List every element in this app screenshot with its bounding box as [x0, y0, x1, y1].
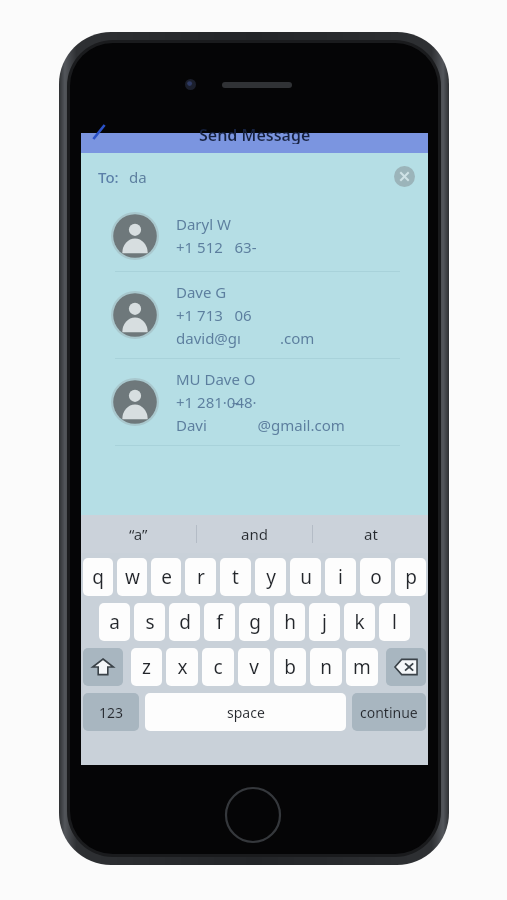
button[interactable]: m — [346, 648, 378, 686]
staticText: continue — [360, 703, 418, 722]
staticText: v — [249, 654, 259, 680]
staticText: m — [353, 654, 371, 680]
button[interactable]: k — [344, 603, 375, 641]
button[interactable]: Backspace — [386, 648, 426, 686]
button[interactable]: o — [360, 558, 391, 596]
staticText: “a” — [129, 524, 148, 544]
staticText: q — [92, 564, 104, 590]
staticText: r — [197, 564, 205, 590]
staticText: b — [284, 654, 296, 680]
staticText: d — [179, 609, 191, 635]
staticText: t — [232, 564, 239, 590]
button[interactable]: p — [395, 558, 426, 596]
staticText: u — [300, 564, 312, 590]
button[interactable]: a — [99, 603, 130, 641]
staticText: +1 713 06 — [176, 305, 252, 325]
staticText: w — [125, 564, 140, 590]
staticText: y — [266, 564, 276, 590]
button[interactable]: x — [166, 648, 198, 686]
button[interactable]: u — [290, 558, 321, 596]
button[interactable]: Back — [91, 125, 107, 143]
staticText: o — [370, 564, 382, 590]
staticText: +1 512 63- — [176, 237, 257, 257]
staticText: s — [145, 609, 155, 635]
button[interactable]: y — [255, 558, 286, 596]
button[interactable]: i — [325, 558, 356, 596]
button[interactable]: continue — [352, 693, 426, 731]
staticText: n — [320, 654, 332, 680]
staticText: z — [142, 654, 151, 680]
staticText: e — [161, 564, 172, 590]
button[interactable]: s — [134, 603, 165, 641]
staticText: j — [322, 609, 327, 635]
staticText: i — [338, 564, 343, 590]
staticText: Dave G — [176, 282, 227, 302]
button[interactable]: h — [274, 603, 305, 641]
button[interactable]: “a” — [81, 515, 196, 553]
staticText: Send Message — [199, 124, 311, 144]
staticText: c — [213, 654, 223, 680]
button[interactable]: d — [169, 603, 200, 641]
button[interactable]: and — [197, 515, 312, 553]
button[interactable]: f — [204, 603, 235, 641]
staticText: david@gı .com — [176, 328, 315, 348]
staticText: 123 — [99, 703, 124, 722]
button[interactable]: z — [131, 648, 162, 686]
staticText: f — [216, 609, 223, 635]
staticText: k — [354, 609, 365, 635]
button[interactable]: Shift — [83, 648, 123, 686]
button[interactable]: w — [117, 558, 147, 596]
staticText: da — [129, 167, 147, 187]
button[interactable]: Daryl W — [81, 200, 428, 271]
button[interactable]: j — [309, 603, 340, 641]
staticText: and — [241, 524, 268, 544]
button[interactable]: Dave G — [81, 272, 428, 358]
button[interactable]: space — [145, 693, 346, 731]
button[interactable]: c — [202, 648, 234, 686]
staticText: p — [405, 564, 417, 590]
button[interactable]: e — [151, 558, 181, 596]
staticText: l — [392, 609, 397, 635]
staticText: at — [364, 524, 378, 544]
button[interactable]: at — [313, 515, 428, 553]
button[interactable]: Clear text — [393, 165, 416, 188]
button[interactable]: n — [310, 648, 342, 686]
staticText: Daryl W — [176, 214, 231, 234]
button[interactable]: v — [238, 648, 270, 686]
button[interactable]: l — [379, 603, 410, 641]
button[interactable]: q — [83, 558, 113, 596]
staticText: g — [249, 609, 261, 635]
button[interactable]: To: — [81, 153, 428, 200]
staticText: +1 281·0̵48· — [176, 392, 257, 412]
button[interactable]: g — [239, 603, 270, 641]
staticText: space — [227, 703, 265, 722]
button[interactable]: 123 — [83, 693, 139, 731]
staticText: Davi @gmail.com — [176, 415, 345, 435]
button[interactable]: t — [220, 558, 251, 596]
button[interactable]: MU Dave O — [81, 359, 428, 445]
staticText: To: — [98, 167, 119, 187]
staticText: h — [284, 609, 296, 635]
staticText: x — [177, 654, 188, 680]
button[interactable]: b — [274, 648, 306, 686]
staticText: MU Dave O — [176, 369, 256, 389]
staticText: a — [109, 609, 120, 635]
button[interactable]: r — [185, 558, 216, 596]
